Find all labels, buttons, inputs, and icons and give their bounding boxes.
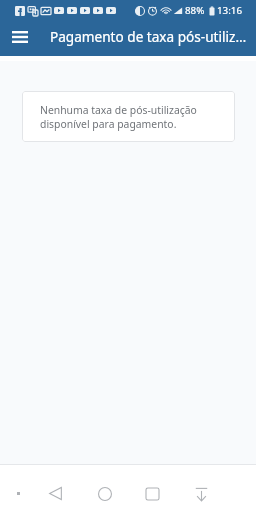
button[interactable]: Recent apps [130,475,174,512]
staticText: 88% [185,4,205,17]
button[interactable]: Open navigation menu [4,19,36,54]
staticText: Pagamento de taxa pós-utiliz… [50,27,247,46]
staticText: 13:16 [217,4,243,17]
button[interactable]: Nenhuma taxa de pós-utilização disponíve… [22,91,235,142]
button[interactable]: Hide navigation bar [179,475,223,512]
button[interactable]: Home [83,475,127,512]
button[interactable]: Pin navigation bar [8,475,28,512]
button[interactable]: Back [33,475,77,512]
staticText: Nenhuma taxa de pós-utilização disponíve… [40,103,197,131]
